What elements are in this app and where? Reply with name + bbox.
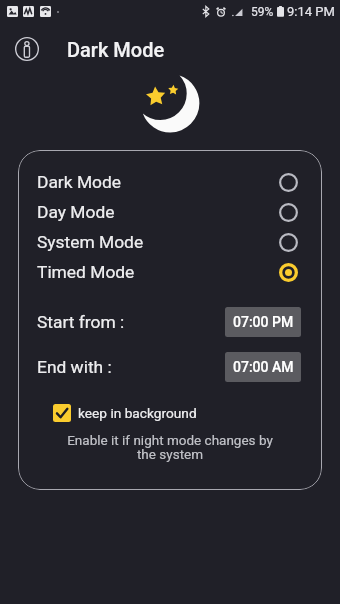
staticText: Dark Mode — [67, 38, 165, 61]
staticText: 07:00 PM — [233, 314, 294, 330]
button[interactable]: 07:00 PM — [225, 307, 301, 337]
button[interactable]: Dark Mode — [18, 167, 322, 197]
staticText: 07:00 AM — [233, 359, 294, 375]
button[interactable]: Day Mode — [18, 197, 322, 227]
staticText: Enable it if night mode changes by — [18, 432, 322, 448]
staticText: System Mode — [37, 232, 144, 252]
staticText: Day Mode — [37, 202, 115, 222]
staticText: 9:14 PM — [287, 4, 335, 19]
button[interactable]: 07:00 AM — [225, 352, 301, 382]
button[interactable]: System Mode — [18, 227, 322, 257]
staticText: 59% — [251, 5, 274, 19]
button[interactable]: keep in background — [53, 404, 197, 422]
staticText: End with : — [37, 357, 112, 377]
staticText: Start from : — [37, 312, 125, 332]
staticText: keep in background — [78, 405, 197, 421]
button[interactable]: Timed Mode — [18, 257, 322, 287]
staticText: Timed Mode — [37, 262, 135, 282]
staticText: Dark Mode — [37, 172, 122, 192]
staticText: the system — [18, 446, 322, 462]
button[interactable]: Info — [10, 32, 44, 66]
